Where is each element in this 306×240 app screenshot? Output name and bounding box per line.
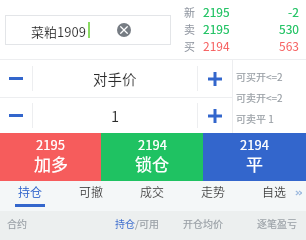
button[interactable]: 走势: [184, 181, 245, 211]
staticText: 1: [111, 105, 120, 126]
button[interactable]: 自选: [245, 181, 306, 211]
staticText: 2194: [240, 135, 269, 154]
staticText: 2195: [203, 3, 230, 20]
button[interactable]: 成交: [123, 181, 184, 211]
staticText: 自选: [262, 183, 287, 200]
staticText: 开仓均价: [183, 216, 223, 230]
staticText: 可撤: [79, 183, 104, 200]
staticText: 530: [279, 20, 299, 37]
staticText: 逐笔盈亏: [257, 216, 297, 230]
button[interactable]: Increase: [198, 60, 232, 97]
button[interactable]: 2195: [0, 133, 101, 181]
staticText: 持仓: [18, 183, 43, 200]
other: More tabs: [295, 189, 303, 197]
staticText: 走势: [201, 183, 226, 200]
staticText: 2194: [203, 37, 230, 54]
button[interactable]: 2194: [203, 133, 306, 181]
staticText: 可卖平 1: [236, 111, 274, 125]
button[interactable]: 菜粕1909: [5, 15, 171, 45]
staticText: 成交: [140, 183, 165, 200]
staticText: 可买开<=2: [236, 69, 283, 83]
staticText: 2194: [138, 135, 167, 154]
button[interactable]: Increase: [198, 98, 232, 133]
staticText: 持仓/可用: [115, 216, 159, 230]
staticText: 2195: [36, 135, 65, 154]
staticText: 563: [279, 37, 299, 54]
staticText: 加多: [34, 151, 68, 176]
button[interactable]: 持仓/可用: [88, 211, 185, 235]
button[interactable]: Decrease: [0, 98, 32, 133]
staticText: 对手价: [93, 68, 137, 89]
staticText: 可卖开<=2: [236, 90, 283, 104]
button[interactable]: 逐笔盈亏: [246, 211, 297, 235]
button[interactable]: 可撤: [62, 181, 123, 211]
staticText: 2195: [203, 20, 230, 37]
button[interactable]: 2194: [101, 133, 203, 181]
staticText: 锁仓: [135, 151, 169, 176]
button[interactable]: Decrease: [0, 60, 32, 97]
staticText: 卖: [184, 21, 195, 37]
button[interactable]: 持仓: [0, 181, 62, 211]
staticText: -2: [288, 3, 299, 20]
staticText: 买: [184, 38, 195, 54]
staticText: 菜粕1909: [31, 22, 86, 41]
button[interactable]: 开仓均价: [181, 211, 225, 235]
button[interactable]: 合约: [7, 211, 88, 235]
staticText: 合约: [7, 216, 27, 230]
staticText: 新: [184, 4, 195, 20]
button[interactable]: 对手价: [33, 60, 197, 97]
button[interactable]: Clear text: [117, 23, 131, 37]
button[interactable]: 1: [33, 98, 197, 133]
staticText: 平: [246, 151, 263, 176]
